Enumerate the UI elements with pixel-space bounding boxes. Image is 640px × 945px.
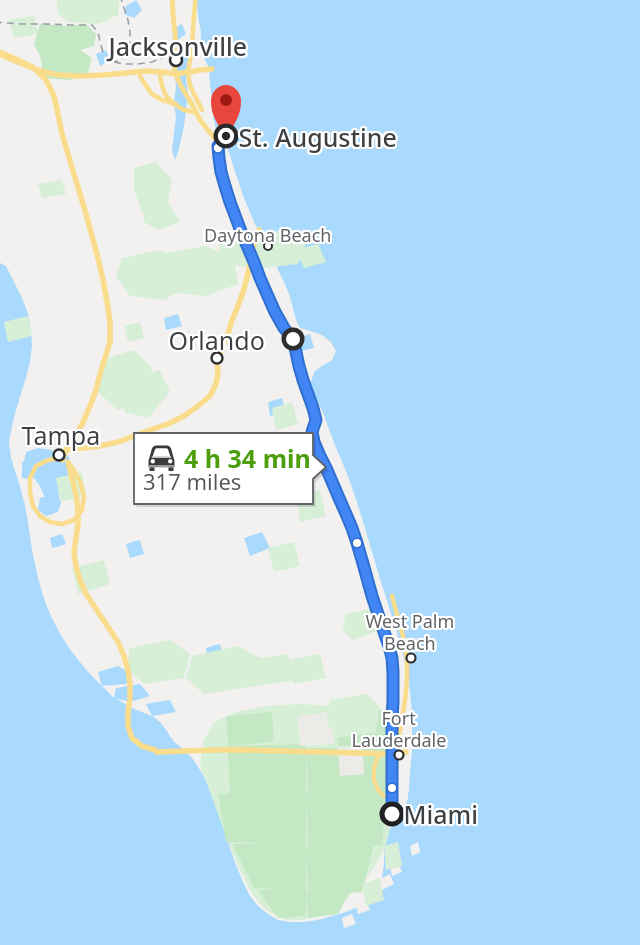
- button[interactable]: [0, 0, 640, 945]
